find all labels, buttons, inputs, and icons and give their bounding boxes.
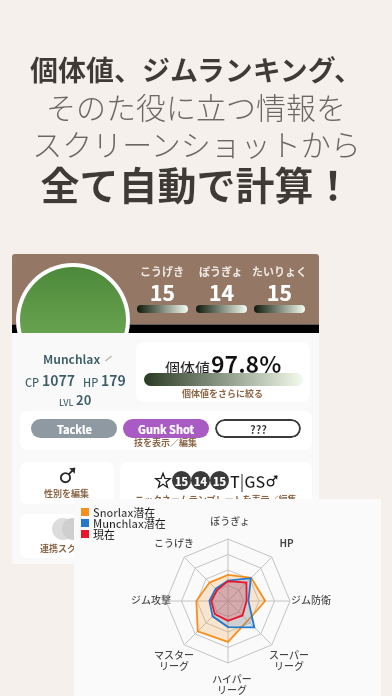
- staticText: 全て自動で計算！: [40, 155, 353, 211]
- staticText: ハイパー リーグ: [212, 671, 252, 696]
- button[interactable]: 性別を編集: [20, 462, 114, 504]
- staticText: 1077: [42, 370, 76, 390]
- staticText: こうげき: [140, 263, 184, 279]
- button[interactable]: 個体値: [136, 342, 310, 402]
- staticText: 個体値、ジムランキング、: [30, 49, 362, 90]
- staticText: スーパー リーグ: [269, 647, 309, 673]
- button[interactable]: ???: [215, 419, 301, 438]
- staticText: マスター リーグ: [154, 647, 194, 673]
- staticText: HP: [279, 535, 294, 549]
- staticText: 15: [267, 277, 292, 307]
- staticText: ???: [250, 421, 267, 437]
- staticText: スクリーンショットから: [32, 121, 361, 164]
- staticText: Snorlax潜在: [93, 504, 156, 520]
- staticText: たいりょく: [252, 263, 307, 279]
- staticText: ぼうぎょ: [199, 263, 243, 279]
- staticText: 現在: [93, 526, 115, 542]
- staticText: LVL: [59, 396, 74, 409]
- staticText: Tackle: [57, 421, 92, 437]
- staticText: 性別を編集: [44, 487, 90, 500]
- staticText: 20: [76, 390, 92, 409]
- staticText: 個体値: [165, 357, 211, 379]
- staticText: 技を表示／編集: [134, 436, 198, 449]
- staticText: ぼうぎょ: [210, 513, 250, 527]
- staticText: こうげき: [154, 535, 194, 549]
- staticText: HP: [83, 374, 99, 390]
- button[interactable]: Gunk Shot: [123, 419, 209, 438]
- staticText: CP: [25, 374, 40, 390]
- staticText: 14: [209, 277, 234, 307]
- button[interactable]: 15: [120, 462, 312, 504]
- staticText: ジム防衛: [291, 592, 331, 606]
- button[interactable]: 連携スクショ: [20, 514, 114, 558]
- staticText: 15: [150, 277, 175, 307]
- staticText: 97.8%: [211, 346, 282, 379]
- staticText: Gunk Shot: [138, 421, 195, 437]
- staticText: Munchlax: [43, 350, 101, 367]
- staticText: 14: [194, 473, 207, 489]
- staticText: T|GS: [230, 469, 266, 492]
- button[interactable]: Tackle: [31, 419, 117, 438]
- staticText: ジム攻撃: [131, 592, 171, 606]
- staticText: Munchlax潜在: [93, 515, 166, 531]
- staticText: ニックネームテンプレートを表示／編集: [135, 493, 297, 504]
- button[interactable]: Munchlax: [14, 350, 136, 406]
- other: Edit name: [104, 354, 113, 363]
- staticText: 179: [101, 370, 126, 390]
- staticText: 連携スクショ: [40, 542, 95, 555]
- staticText: 15: [175, 473, 188, 489]
- staticText: 15: [213, 473, 226, 489]
- button[interactable]: [120, 514, 312, 558]
- staticText: そのた役に立つ情報を: [46, 84, 346, 127]
- staticText: 個体値をさらに絞る: [182, 387, 264, 400]
